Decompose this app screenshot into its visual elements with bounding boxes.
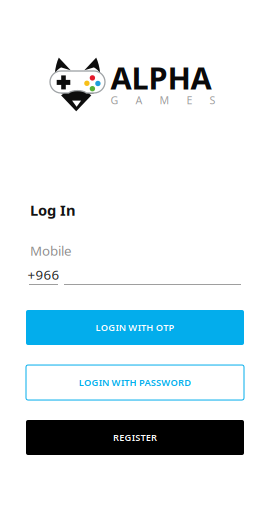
button[interactable]: REGISTER — [26, 420, 244, 455]
staticText: ALPHA — [110, 57, 211, 98]
staticText: LOGIN WITH OTP — [96, 321, 174, 334]
staticText: Log In — [30, 200, 76, 220]
staticText: +966 — [27, 266, 59, 283]
staticText: Mobile — [30, 242, 72, 259]
button[interactable]: LOGIN WITH OTP — [26, 310, 244, 345]
staticText: GAMES — [110, 93, 215, 107]
staticText: LOGIN WITH PASSWORD — [79, 376, 191, 389]
staticText: REGISTER — [113, 431, 157, 444]
button[interactable]: LOGIN WITH PASSWORD — [26, 365, 244, 400]
